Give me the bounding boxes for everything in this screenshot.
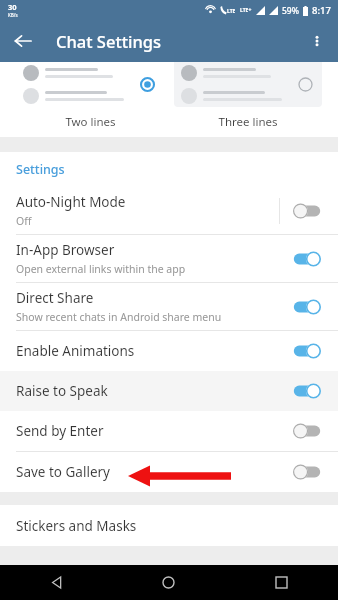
- staticText: Auto-Night Mode: [16, 193, 126, 211]
- staticText: Show recent chats in Android share menu: [16, 310, 222, 324]
- staticText: 8:17: [312, 4, 331, 17]
- staticText: LTE: [227, 8, 236, 15]
- staticText: Send by Enter: [16, 422, 104, 440]
- button[interactable]: Two lines: [16, 62, 164, 137]
- staticText: 59%: [282, 5, 299, 17]
- button[interactable]: More options: [300, 24, 334, 58]
- staticText: 30: [8, 2, 17, 12]
- button[interactable]: Recent apps: [225, 565, 338, 600]
- button[interactable]: On: [292, 382, 322, 400]
- button[interactable]: Home: [112, 565, 225, 600]
- staticText: Raise to Speak: [16, 382, 108, 400]
- button[interactable]: Off: [292, 463, 322, 481]
- staticText: Two lines: [65, 114, 116, 130]
- staticText: LTE+: [240, 7, 252, 14]
- staticText: Stickers and Masks: [16, 517, 137, 535]
- button[interactable]: Back: [0, 565, 112, 600]
- button[interactable]: Auto-Night Mode: [0, 187, 338, 234]
- staticText: Direct Share: [16, 289, 94, 307]
- button[interactable]: Back: [6, 24, 40, 58]
- button[interactable]: Three lines: [174, 62, 322, 137]
- button[interactable]: Send by Enter: [0, 411, 338, 451]
- button[interactable]: Stickers and Masks: [0, 505, 338, 546]
- staticText: Off: [16, 214, 32, 228]
- button[interactable]: On: [292, 250, 322, 268]
- button[interactable]: In-App Browser: [0, 235, 338, 282]
- staticText: Settings: [16, 161, 65, 178]
- button[interactable]: Off: [292, 422, 322, 440]
- staticText: Chat Settings: [56, 30, 162, 52]
- button[interactable]: Direct Share: [0, 283, 338, 330]
- staticText: In-App Browser: [16, 241, 115, 259]
- button[interactable]: Save to Gallery: [0, 452, 338, 492]
- button[interactable]: Raise to Speak: [0, 371, 338, 411]
- staticText: Enable Animations: [16, 342, 135, 360]
- staticText: KB/s: [8, 12, 18, 18]
- staticText: Open external links within the app: [16, 262, 186, 276]
- button[interactable]: On: [292, 298, 322, 316]
- button[interactable]: On: [292, 342, 322, 360]
- staticText: Save to Gallery: [16, 463, 110, 481]
- button[interactable]: Off: [292, 202, 322, 220]
- staticText: Three lines: [218, 114, 278, 130]
- button[interactable]: Enable Animations: [0, 331, 338, 371]
